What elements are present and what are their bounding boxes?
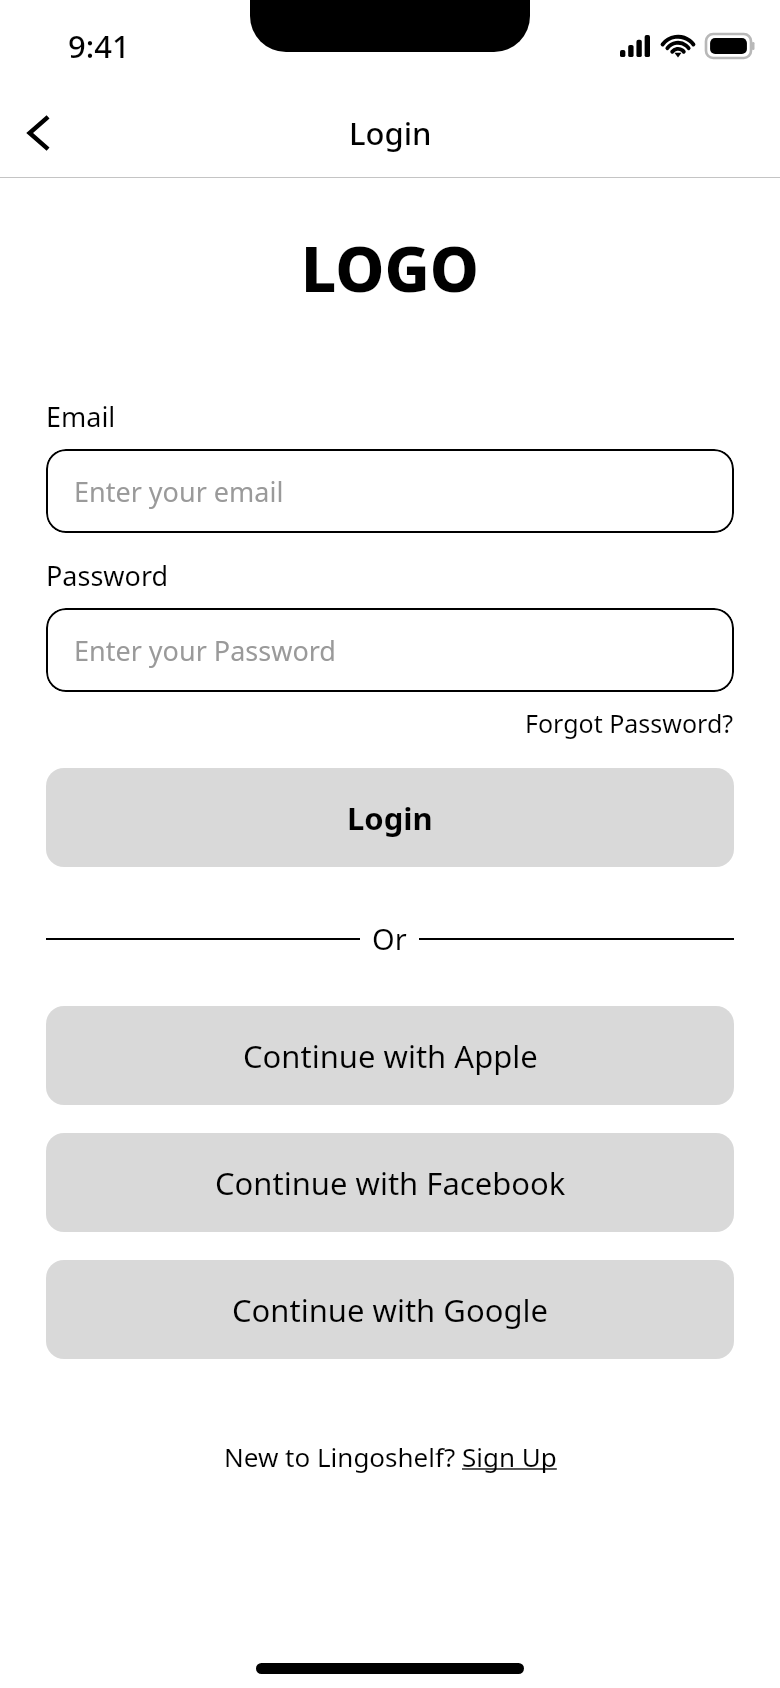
staticText: Login — [347, 797, 433, 839]
staticText: Continue with Facebook — [215, 1162, 566, 1204]
staticText: LOGO — [46, 226, 734, 310]
staticText: Login — [349, 112, 432, 154]
staticText: Continue with Google — [232, 1289, 548, 1331]
button[interactable]: Login — [46, 768, 734, 867]
staticText: Or — [372, 919, 407, 958]
staticText: 9:41 — [68, 25, 130, 67]
staticText: Continue with Apple — [243, 1035, 538, 1077]
staticText: Enter your email — [74, 473, 284, 510]
staticText: Email — [46, 398, 116, 435]
staticText: Password — [46, 557, 169, 594]
button[interactable]: Back — [8, 103, 68, 163]
button[interactable]: Continue with Facebook — [46, 1133, 734, 1232]
button[interactable]: Continue with Google — [46, 1260, 734, 1359]
button[interactable]: Forgot Password? — [525, 704, 734, 742]
button[interactable]: Enter your email — [46, 449, 734, 533]
button[interactable]: Enter your Password — [46, 608, 734, 692]
button[interactable]: Continue with Apple — [46, 1006, 734, 1105]
staticText: New to Lingoshelf? — [224, 1439, 462, 1474]
button[interactable]: Sign Up — [462, 1439, 557, 1474]
staticText: Enter your Password — [74, 632, 336, 669]
